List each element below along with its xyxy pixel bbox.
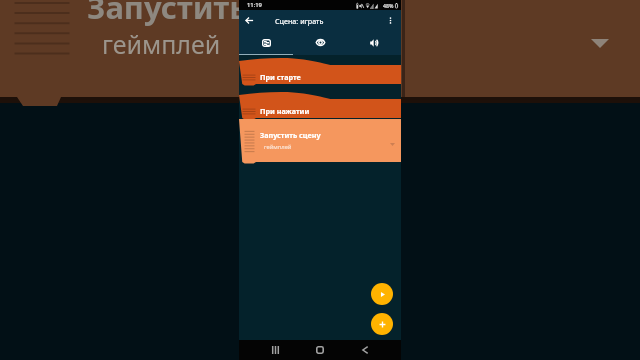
button[interactable]: Recent apps — [260, 340, 290, 360]
button[interactable]: Sound — [347, 31, 401, 54]
staticText: Сцена: играть — [275, 16, 380, 26]
staticText: Запустить — [87, 0, 248, 28]
button[interactable]: Home — [305, 340, 335, 360]
staticText: геймплей — [102, 27, 221, 61]
staticText: При старте — [260, 72, 301, 82]
staticText: геймплей — [264, 143, 292, 151]
staticText: Запустить сцену — [260, 130, 321, 140]
button[interactable]: Add — [371, 313, 393, 335]
button[interactable]: More options — [380, 10, 401, 31]
button[interactable]: Preview — [293, 31, 347, 54]
button[interactable]: Play — [371, 283, 393, 305]
button[interactable]: Back — [239, 10, 260, 31]
staticText: При нажатии — [260, 106, 310, 116]
button[interactable]: При нажатии — [239, 92, 401, 118]
button[interactable]: Back — [350, 340, 380, 360]
staticText: 48% — [383, 2, 394, 9]
staticText: 11:19 — [247, 1, 262, 9]
button[interactable]: Scripts — [239, 31, 293, 54]
button[interactable]: Запустить сцену — [239, 119, 401, 162]
button[interactable]: При старте — [239, 58, 401, 84]
